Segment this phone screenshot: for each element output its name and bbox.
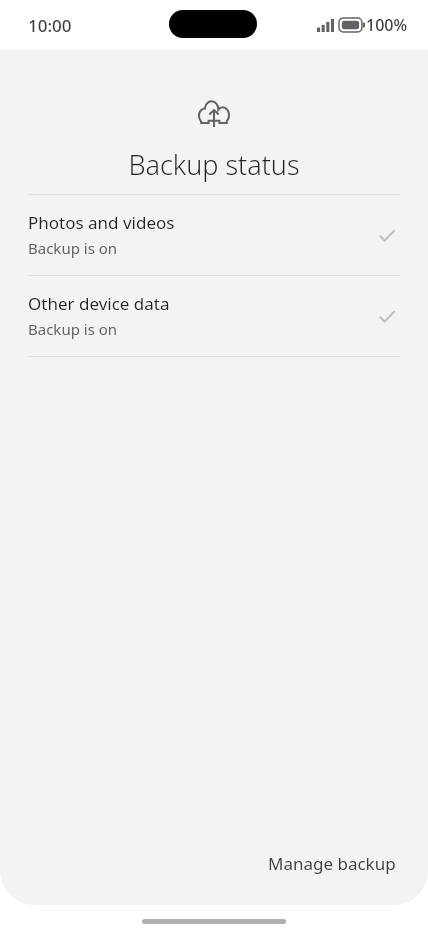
staticText: 100% bbox=[366, 14, 408, 36]
staticText: Other device data bbox=[28, 292, 170, 315]
staticText: Manage backup bbox=[268, 852, 396, 875]
staticText: Backup is on bbox=[28, 319, 118, 339]
button[interactable]: Manage backup bbox=[258, 844, 406, 883]
staticText: Photos and videos bbox=[28, 211, 175, 234]
button[interactable]: Photos and videos bbox=[0, 195, 428, 275]
staticText: 10:00 bbox=[28, 14, 72, 37]
staticText: Backup status bbox=[0, 146, 428, 183]
other: Backup enabled bbox=[370, 299, 404, 333]
button[interactable]: Other device data bbox=[0, 276, 428, 356]
staticText: Backup is on bbox=[28, 238, 118, 258]
other: Backup enabled bbox=[370, 218, 404, 252]
